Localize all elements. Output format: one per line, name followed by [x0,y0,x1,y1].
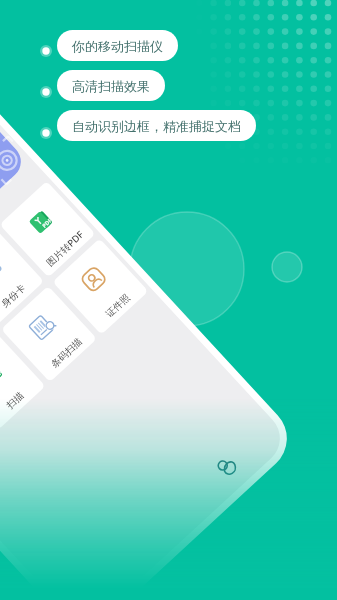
staticText: 高清扫描效果 [72,78,150,94]
button[interactable]: 你的移动扫描仪 [57,30,178,61]
staticText: 自动识别边框，精准捕捉文档 [72,118,241,134]
button[interactable]: 自动识别边框，精准捕捉文档 [57,110,256,141]
staticText: 你的移动扫描仪 [72,38,163,54]
button[interactable]: 高清扫描效果 [57,70,165,101]
